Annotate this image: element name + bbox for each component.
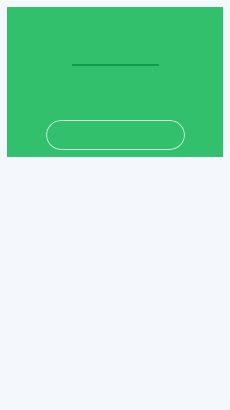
button[interactable]: Search bbox=[46, 120, 185, 150]
